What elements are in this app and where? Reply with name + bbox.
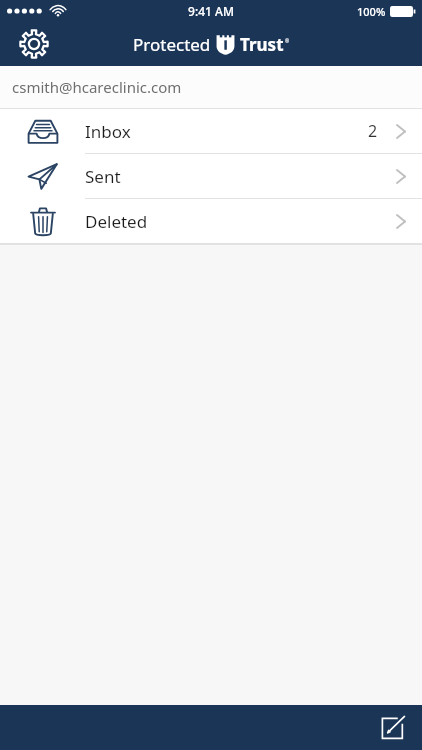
staticText: Deleted [85,210,396,233]
staticText: 2 [368,120,378,142]
staticText: Inbox [85,120,368,143]
button[interactable]: Inbox [0,109,422,153]
staticText: ® [285,38,290,45]
staticText: Trust [240,33,284,56]
button[interactable]: Sent [0,154,422,198]
staticText: csmith@hcareclinic.com [12,77,182,97]
staticText: 9:41 AM [188,3,234,19]
button[interactable]: csmith@hcareclinic.com [0,66,422,108]
staticText: Protected [133,33,211,56]
staticText: 100% [357,4,386,19]
button[interactable]: Compose [372,708,412,748]
button[interactable]: Deleted [0,199,422,243]
staticText: Sent [85,165,396,188]
button[interactable]: Settings [12,22,56,66]
